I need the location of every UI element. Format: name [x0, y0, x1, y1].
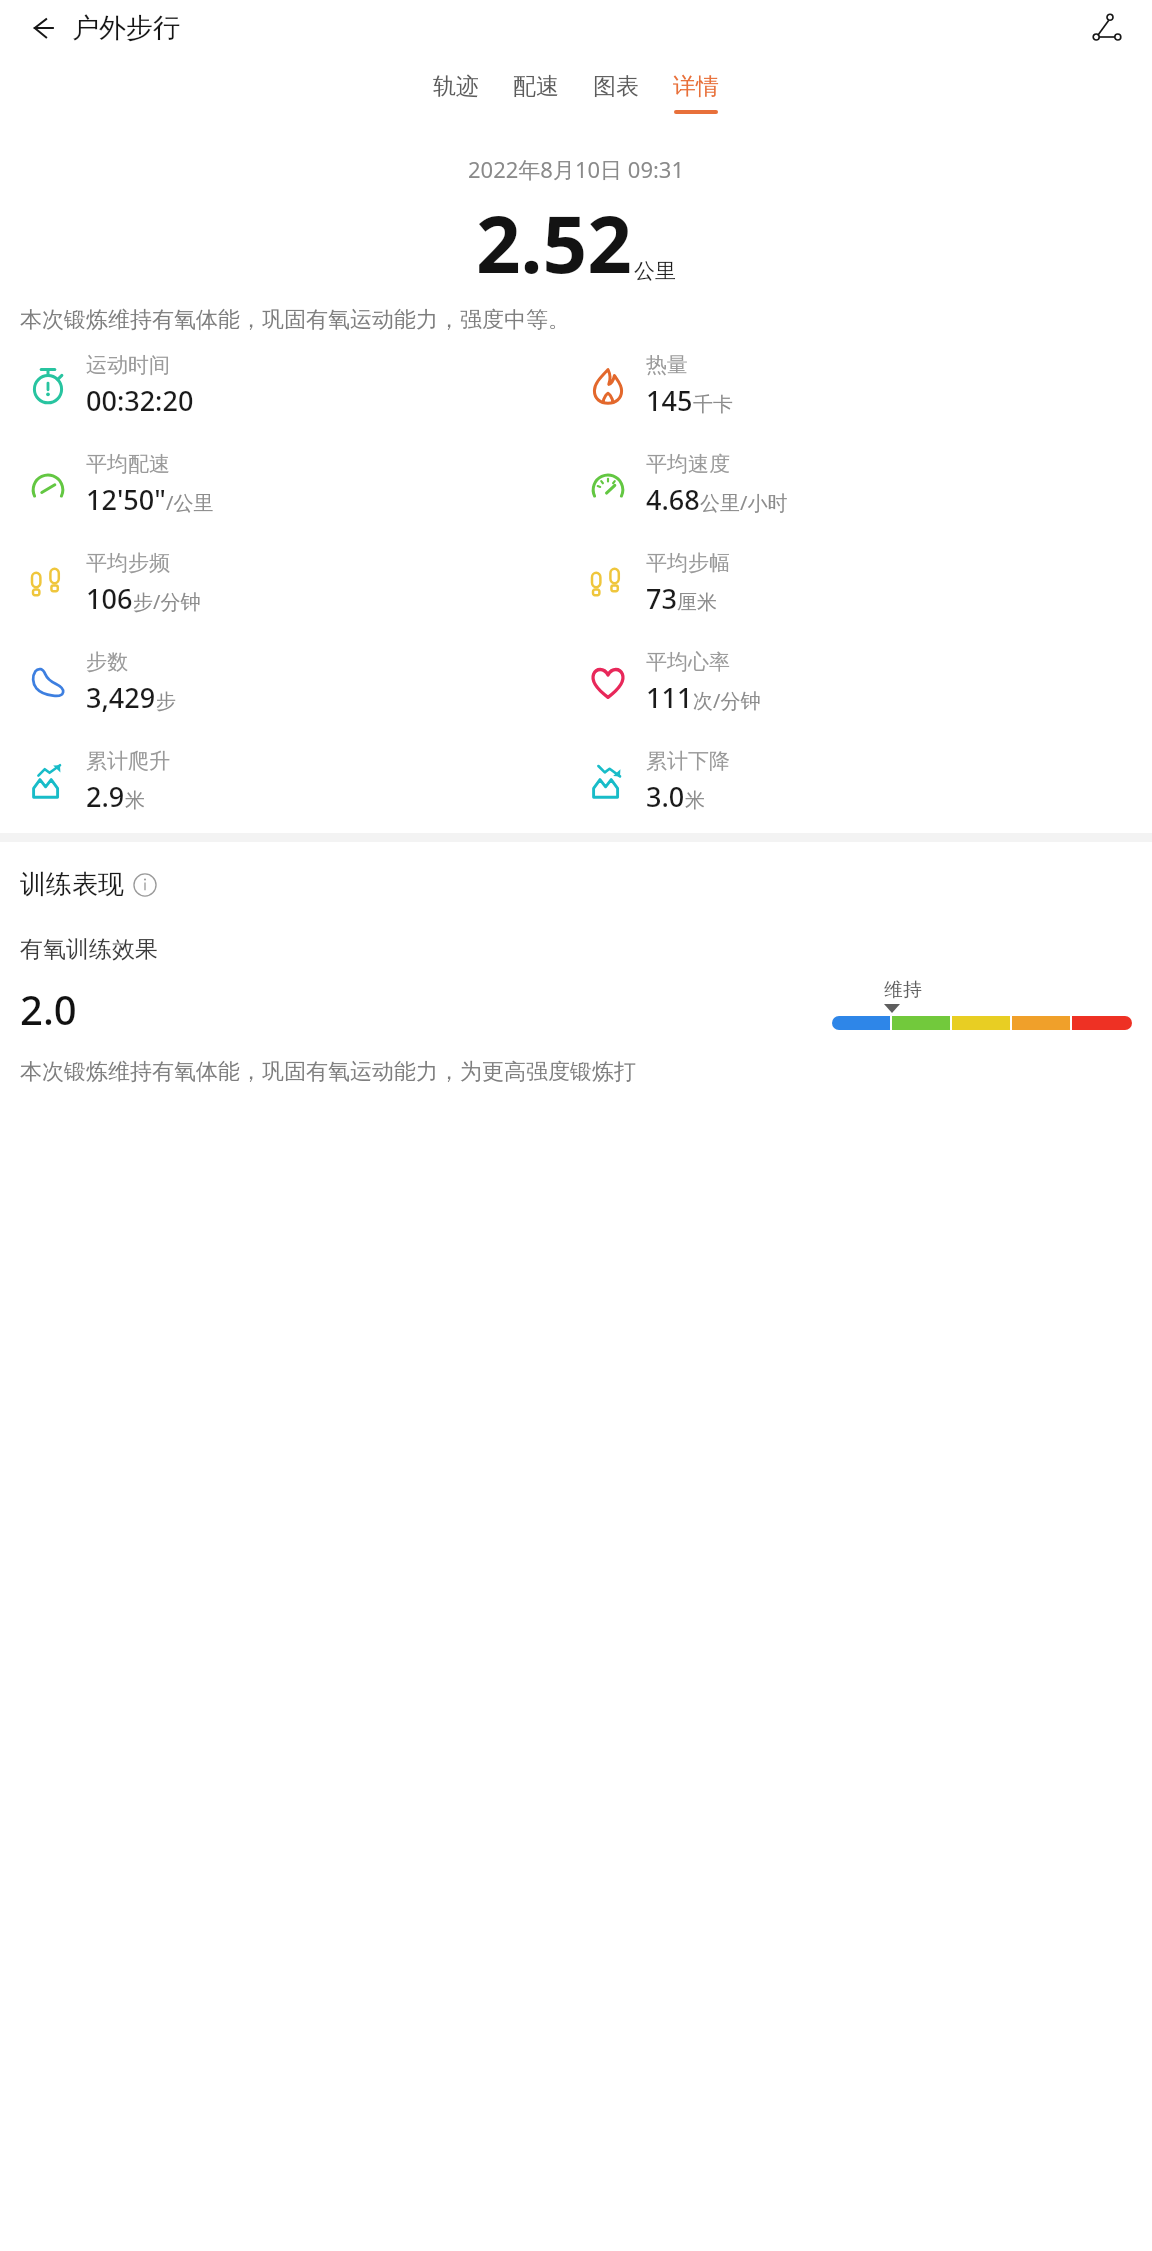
staticText: 平均步频 [86, 550, 170, 576]
staticText: 2.0 [20, 982, 77, 1036]
button[interactable]: 步数 [22, 649, 582, 716]
button[interactable]: 运动时间 [22, 352, 582, 419]
button[interactable]: 平均心率 [582, 649, 1142, 716]
staticText: 3,429 [86, 679, 156, 716]
staticText: 145 [646, 382, 693, 419]
staticText: 12'50" [86, 481, 166, 518]
staticText: 步数 [86, 649, 128, 675]
button[interactable]: 详情 [656, 66, 736, 120]
staticText: 千卡 [693, 392, 733, 417]
button[interactable]: Back [20, 6, 64, 50]
button[interactable]: 轨迹 [416, 66, 496, 120]
staticText: 图表 [593, 72, 639, 101]
staticText: 配速 [513, 72, 559, 101]
staticText: 平均配速 [86, 451, 170, 477]
staticText: 平均速度 [646, 451, 730, 477]
button[interactable]: 热量 [582, 352, 1142, 419]
staticText: 运动时间 [86, 352, 170, 378]
staticText: 本次锻炼维持有氧体能，巩固有氧运动能力，强度中等。 [20, 306, 1132, 334]
button[interactable]: 配速 [496, 66, 576, 120]
staticText: 热量 [646, 352, 688, 378]
button[interactable]: 平均配速 [22, 451, 582, 518]
button[interactable]: 累计下降 [582, 748, 1142, 815]
staticText: 公里/小时 [700, 489, 788, 516]
staticText: 00:32:20 [86, 382, 194, 419]
staticText: 公里 [634, 258, 676, 284]
staticText: 轨迹 [433, 72, 479, 101]
button[interactable]: Share [1084, 5, 1130, 51]
staticText: 步 [156, 689, 176, 714]
staticText: 3.0 [646, 778, 685, 815]
staticText: 4.68 [646, 481, 700, 518]
staticText: 米 [685, 788, 705, 813]
staticText: 106 [86, 580, 133, 617]
button[interactable]: 图表 [576, 66, 656, 120]
other: Info [132, 872, 158, 898]
staticText: 详情 [673, 72, 719, 101]
staticText: 平均步幅 [646, 550, 730, 576]
staticText: 有氧训练效果 [20, 935, 158, 964]
staticText: 厘米 [677, 590, 717, 615]
staticText: 平均心率 [646, 649, 730, 675]
staticText: 户外步行 [72, 11, 180, 45]
staticText: 2.52 [476, 190, 632, 296]
staticText: 本次锻炼维持有氧体能，巩固有氧运动能力，为更高强度锻炼打 [20, 1058, 636, 1086]
staticText: 累计爬升 [86, 748, 170, 774]
staticText: 2022年8月10日 09:31 [468, 154, 685, 184]
button[interactable]: 平均步频 [22, 550, 582, 617]
button[interactable]: 平均步幅 [582, 550, 1142, 617]
staticText: 2.9 [86, 778, 125, 815]
staticText: 累计下降 [646, 748, 730, 774]
staticText: 维持 [884, 978, 922, 1002]
button[interactable]: 累计爬升 [22, 748, 582, 815]
staticText: 训练表现 [20, 868, 124, 901]
button[interactable]: 训练表现 [20, 868, 158, 901]
staticText: 111 [646, 679, 693, 716]
staticText: 次/分钟 [693, 687, 761, 714]
staticText: /公里 [166, 489, 214, 516]
button[interactable]: 平均速度 [582, 451, 1142, 518]
staticText: 米 [125, 788, 145, 813]
staticText: 73 [646, 580, 677, 617]
staticText: 步/分钟 [133, 588, 201, 615]
